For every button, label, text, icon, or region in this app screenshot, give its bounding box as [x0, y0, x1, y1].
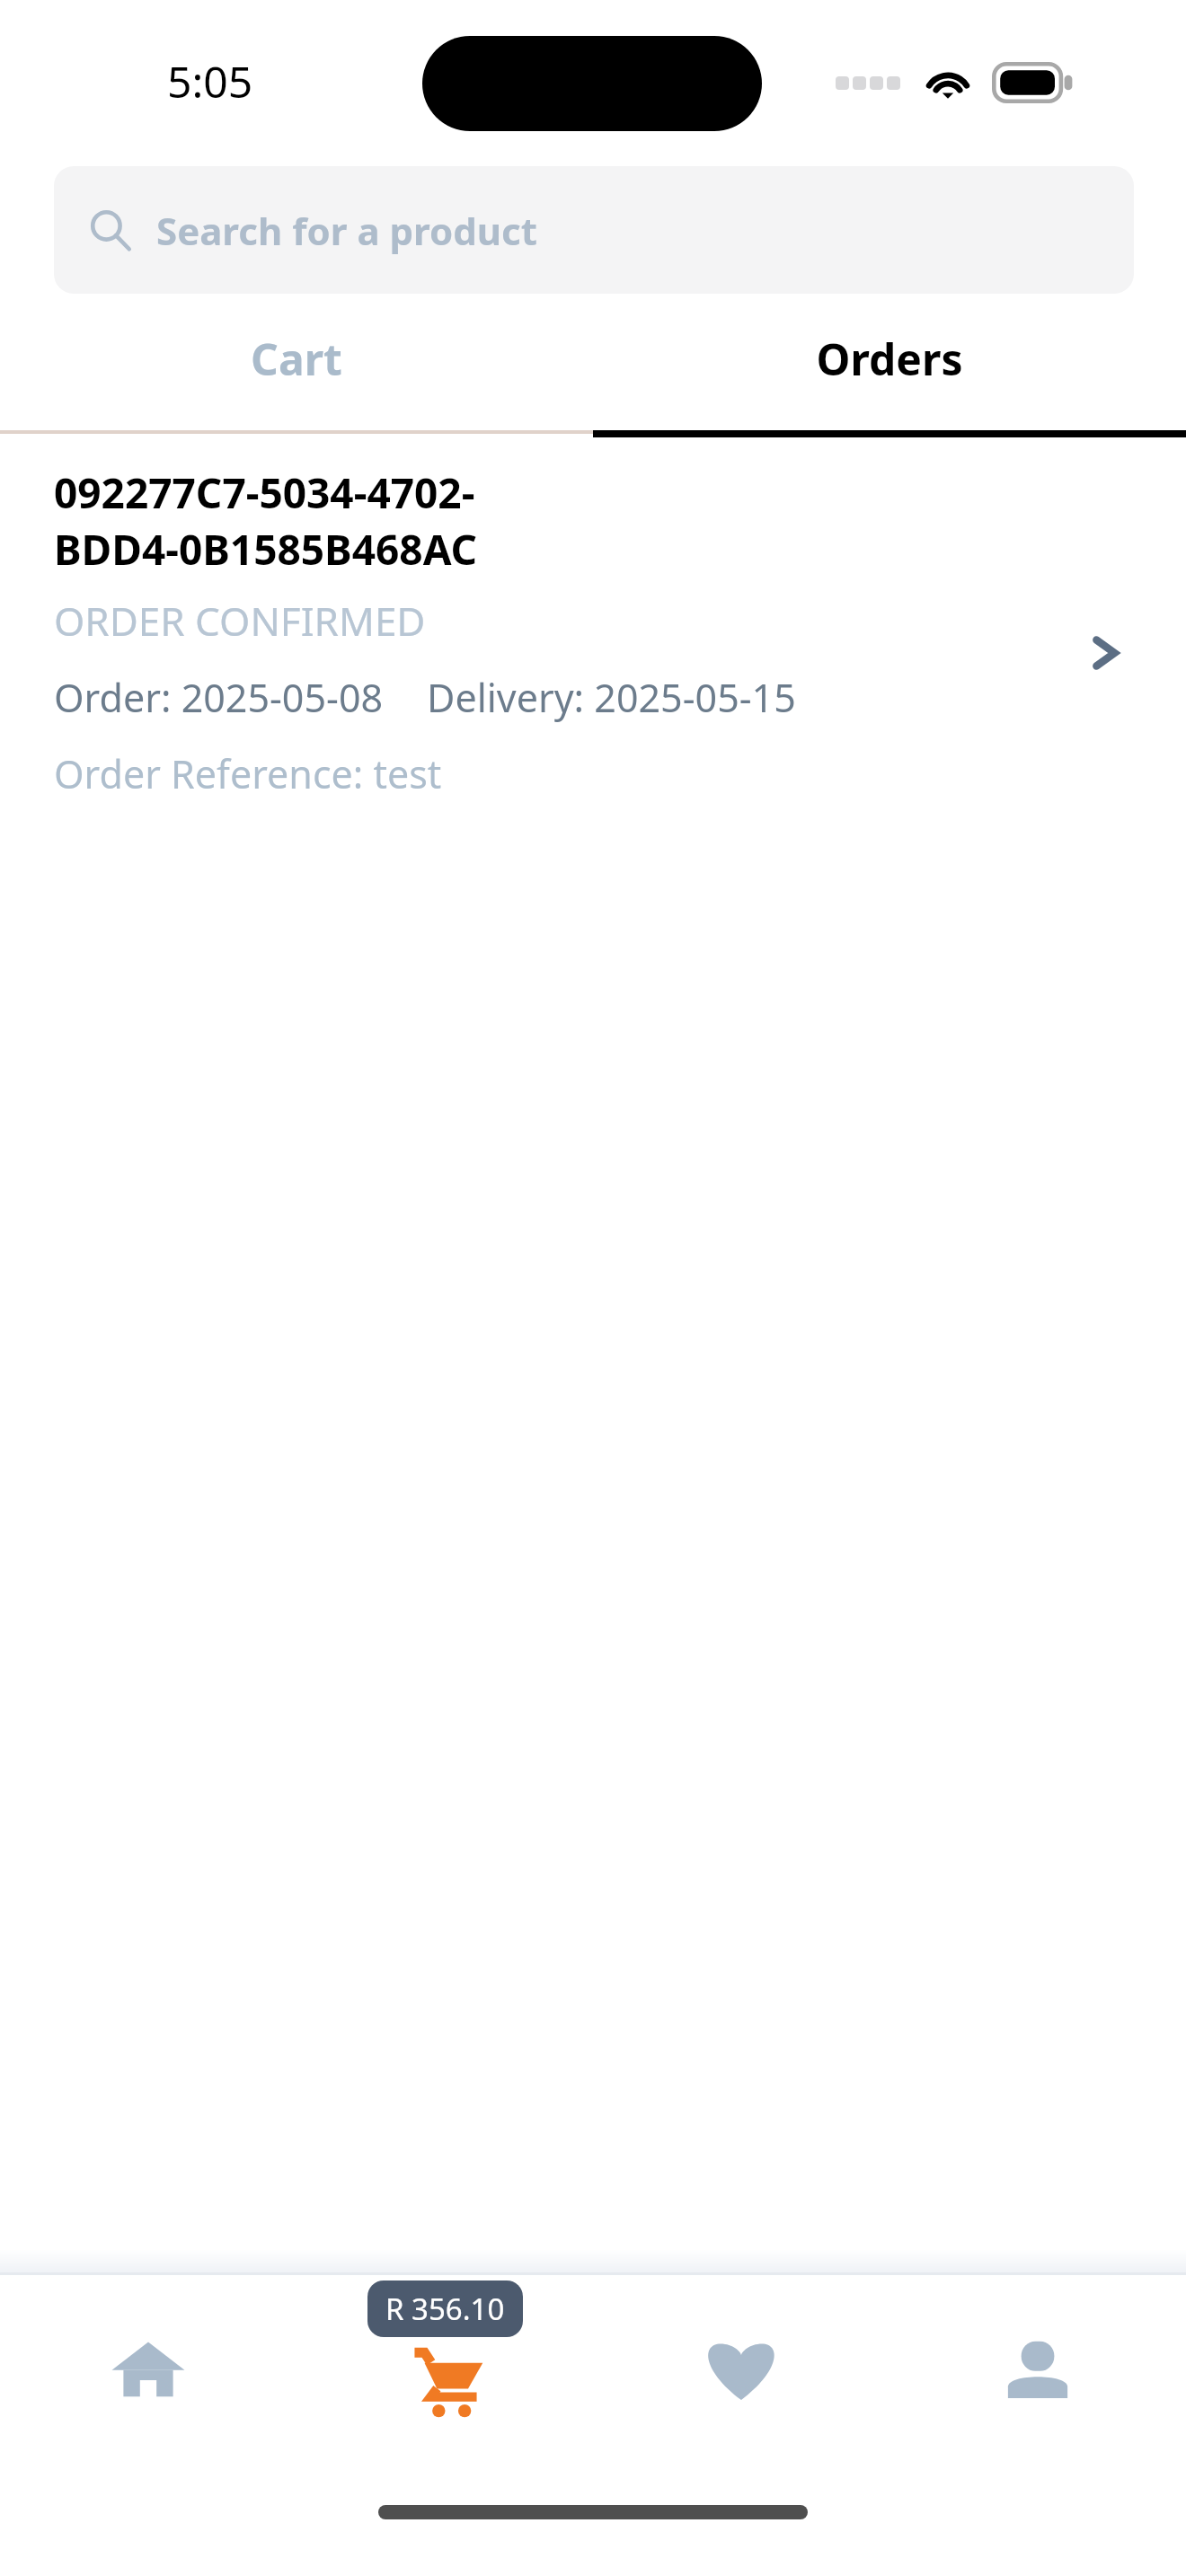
staticText: 092277C7-5034-4702- [54, 464, 475, 521]
button[interactable]: Favourites [593, 2275, 889, 2500]
button[interactable]: Orders [593, 315, 1186, 401]
button[interactable]: Cart [0, 315, 593, 401]
button[interactable]: Account [889, 2275, 1186, 2500]
button[interactable]: Home [0, 2275, 296, 2500]
staticText: R 356.10 [385, 2289, 505, 2329]
staticText: 5:05 [167, 52, 253, 110]
staticText: Cart [251, 330, 342, 388]
staticText: BDD4-0B1585B468AC [54, 521, 478, 578]
button[interactable]: 092277C7-5034-4702- [0, 437, 1186, 822]
button[interactable]: Cart, R 356.10 [296, 2275, 593, 2500]
other: Open order details [1076, 624, 1134, 682]
staticText: Order: 2025-05-08 [54, 671, 384, 724]
staticText: Order Reference: test [54, 747, 442, 800]
staticText: Orders [816, 330, 963, 388]
staticText: Search for a product [156, 205, 537, 256]
staticText: Delivery: 2025-05-15 [427, 671, 796, 724]
staticText: ORDER CONFIRMED [54, 594, 426, 648]
button[interactable]: Search for a product [54, 166, 1134, 294]
